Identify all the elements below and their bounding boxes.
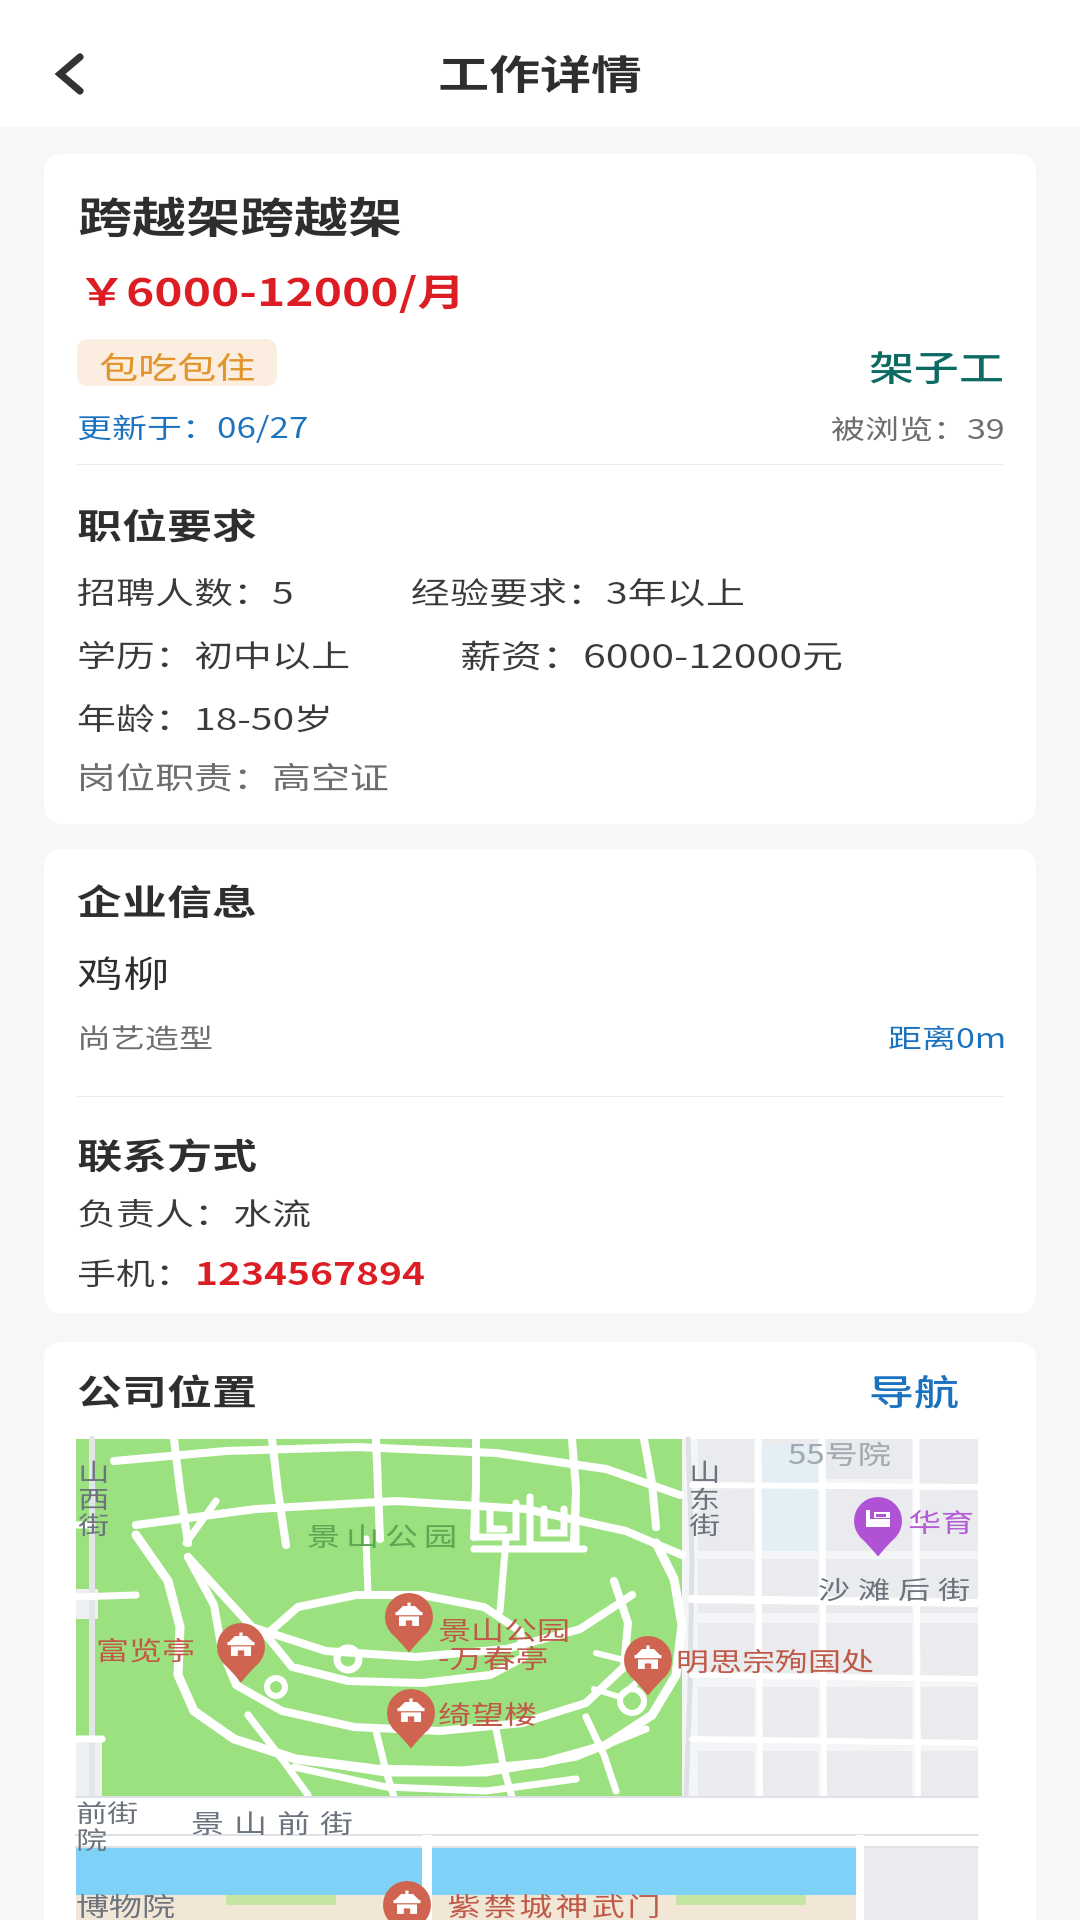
staticText: 架子工 (869, 340, 1005, 391)
staticText: 工作详情 (438, 43, 643, 101)
staticText: 沙滩后街 (818, 1570, 979, 1606)
staticText: 学历：初中以上 (77, 632, 351, 676)
staticText: 明思宗殉国处 (676, 1641, 874, 1679)
staticText: 距离0m (888, 1017, 1007, 1056)
button[interactable]: 手机： (77, 1244, 426, 1300)
staticText: 职位要求 (77, 498, 258, 549)
staticText: 山 东 街 (689, 1453, 720, 1541)
staticText: 1234567894 (195, 1250, 426, 1294)
button[interactable]: 导航 (869, 1357, 960, 1422)
staticText: 被浏览：39 (831, 408, 1005, 447)
staticText: 薪资：6000-12000元 (460, 630, 844, 677)
staticText: 鸡柳 (77, 945, 169, 998)
staticText: 景山前街 (186, 1803, 358, 1841)
staticText: 华育 (908, 1502, 974, 1540)
staticText: 绮望楼 (438, 1694, 537, 1732)
staticText: 跨越架跨越架 (78, 183, 402, 245)
staticText: 前街 院 (76, 1793, 138, 1856)
button[interactable]: Map location (76, 1439, 978, 1920)
staticText: ￥6000-12000/月 (78, 261, 466, 317)
staticText: 企业信息 (77, 874, 258, 925)
staticText: 岗位职责：高空证 (77, 754, 390, 798)
staticText: 55号院 (788, 1434, 891, 1472)
staticText: 经验要求：3年以上 (411, 569, 745, 613)
staticText: 包吃包住 (99, 344, 256, 381)
staticText: 导航 (869, 1364, 960, 1415)
button[interactable]: 包吃包住 (77, 339, 277, 386)
staticText: 紫禁城神武门 (446, 1886, 662, 1920)
staticText: 联系方式 (77, 1128, 258, 1179)
staticText: 景山公园 (304, 1516, 460, 1554)
staticText: 负责人：水流 (77, 1190, 312, 1234)
staticText: 尚艺造型 (77, 1017, 213, 1056)
staticText: 更新于：06/27 (77, 405, 309, 446)
staticText: 年龄：18-50岁 (77, 695, 334, 739)
staticText: 博物院 (76, 1886, 175, 1920)
button[interactable]: Back (37, 41, 103, 107)
staticText: 手机： (77, 1250, 195, 1294)
staticText: 富览亭 (96, 1630, 195, 1668)
staticText: 山 西 街 (78, 1453, 109, 1541)
staticText: 景山公园 -万春亭 (438, 1610, 570, 1675)
button[interactable]: 距离0m (888, 1012, 1007, 1061)
staticText: 公司位置 (77, 1364, 258, 1415)
staticText: 招聘人数：5 (77, 569, 294, 613)
